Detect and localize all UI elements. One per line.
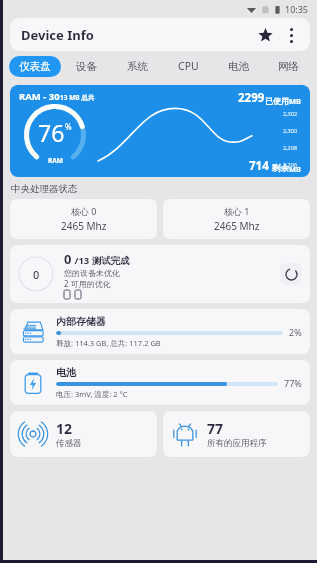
staticText: 系统 xyxy=(127,60,148,73)
button[interactable]: 核心 0 xyxy=(10,199,157,239)
staticText: 释放: 114.3 GB, 总共: 117.2 GB xyxy=(56,338,161,348)
staticText: 77 xyxy=(207,419,224,438)
button[interactable]: RAM - 30 xyxy=(10,85,310,177)
staticText: 10:35 xyxy=(285,3,309,15)
button[interactable]: 12 xyxy=(10,411,157,457)
staticText: 0 xyxy=(33,267,40,282)
button[interactable]: 内部存储器 xyxy=(10,309,310,354)
staticText: 2% xyxy=(289,326,302,338)
staticText: 仪表盘 xyxy=(19,60,51,73)
staticText: 传感器 xyxy=(56,438,82,449)
staticText: 内部存储器 xyxy=(56,315,106,328)
staticText: 电池 xyxy=(56,366,76,379)
staticText: /13 测试完成 xyxy=(72,254,130,267)
button[interactable]: 系统 xyxy=(112,60,163,73)
staticText: 76 xyxy=(38,117,65,148)
staticText: 0 xyxy=(64,250,72,268)
staticText: 2,298 xyxy=(283,144,298,151)
staticText: 电压: 3mV, 温度: 2 °C xyxy=(56,389,128,399)
button[interactable]: 仪表盘 xyxy=(9,56,61,77)
staticText: % xyxy=(65,121,72,132)
staticText: 所有的应用程序 xyxy=(207,438,267,449)
staticText: MB xyxy=(289,96,302,106)
staticText: RAM xyxy=(48,156,63,165)
staticText: 2,300 xyxy=(283,127,298,134)
staticText: RAM - 30 xyxy=(19,90,60,103)
staticText: 2 可用的优化 xyxy=(64,278,111,289)
button[interactable]: 电池 xyxy=(10,360,310,405)
staticText: CPU xyxy=(178,59,199,73)
staticText: 网络 xyxy=(278,60,299,73)
button[interactable]: CPU xyxy=(163,59,213,73)
staticText: 剩余 xyxy=(272,163,289,174)
staticText: 核心 1 xyxy=(224,205,250,217)
button[interactable]: 77 xyxy=(163,411,310,457)
staticText: 设备 xyxy=(76,60,97,73)
staticText: 77% xyxy=(284,377,302,389)
button[interactable]: Favorite xyxy=(252,22,278,48)
staticText: 中央处理器状态 xyxy=(11,183,78,195)
button[interactable]: 网络 xyxy=(263,60,313,73)
staticText: MB xyxy=(289,164,302,174)
staticText: 2465 Mhz xyxy=(61,219,107,233)
button[interactable]: 核心 1 xyxy=(163,199,310,239)
staticText: 13 MB 总共 xyxy=(60,93,95,102)
button[interactable]: Refresh xyxy=(280,263,302,285)
staticText: 2,296 xyxy=(283,161,298,168)
staticText: 已使用 xyxy=(265,96,289,106)
button[interactable]: 设备 xyxy=(61,60,112,73)
staticText: 2465 Mhz xyxy=(214,219,260,233)
button[interactable]: 电池 xyxy=(213,60,263,73)
staticText: 您的设备未优化 xyxy=(64,268,120,278)
staticText: 2299 xyxy=(238,90,265,106)
button[interactable]: More options xyxy=(278,22,304,48)
staticText: 2,302 xyxy=(283,110,298,117)
staticText: Device Info xyxy=(21,26,94,44)
staticText: 714 xyxy=(249,158,269,174)
staticText: 电池 xyxy=(228,60,249,73)
button[interactable]: 0 xyxy=(10,245,310,303)
staticText: 核心 0 xyxy=(71,205,97,217)
staticText: 12 xyxy=(56,419,73,438)
